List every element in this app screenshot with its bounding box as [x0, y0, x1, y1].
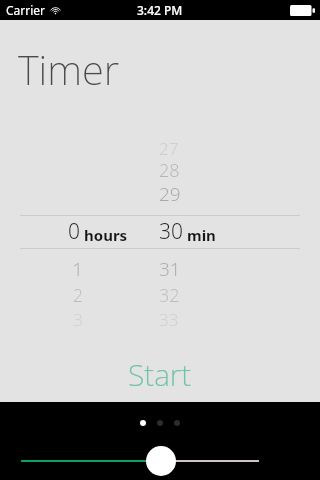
button[interactable]: 30 — [159, 217, 216, 246]
staticText: 31 — [159, 256, 181, 282]
staticText: 1 — [72, 256, 83, 282]
staticText: min — [187, 225, 216, 245]
staticText: 30 — [159, 217, 183, 246]
staticText: Timer — [18, 42, 120, 96]
button[interactable]: Brightness slider — [0, 444, 320, 480]
button[interactable]: 0 — [68, 217, 128, 246]
staticText: 3:42 PM — [137, 2, 183, 18]
staticText: 29 — [159, 181, 181, 207]
staticText: Start — [128, 354, 192, 395]
staticText: 0 — [68, 217, 80, 246]
staticText: 3 — [73, 308, 83, 331]
staticText: 28 — [159, 158, 180, 183]
staticText: 2 — [72, 283, 83, 308]
staticText: hours — [84, 225, 128, 245]
staticText: 33 — [159, 308, 179, 331]
staticText: 32 — [159, 283, 180, 308]
staticText: 27 — [159, 137, 179, 160]
button[interactable]: Start — [0, 352, 320, 396]
staticText: Carrier — [6, 2, 46, 18]
